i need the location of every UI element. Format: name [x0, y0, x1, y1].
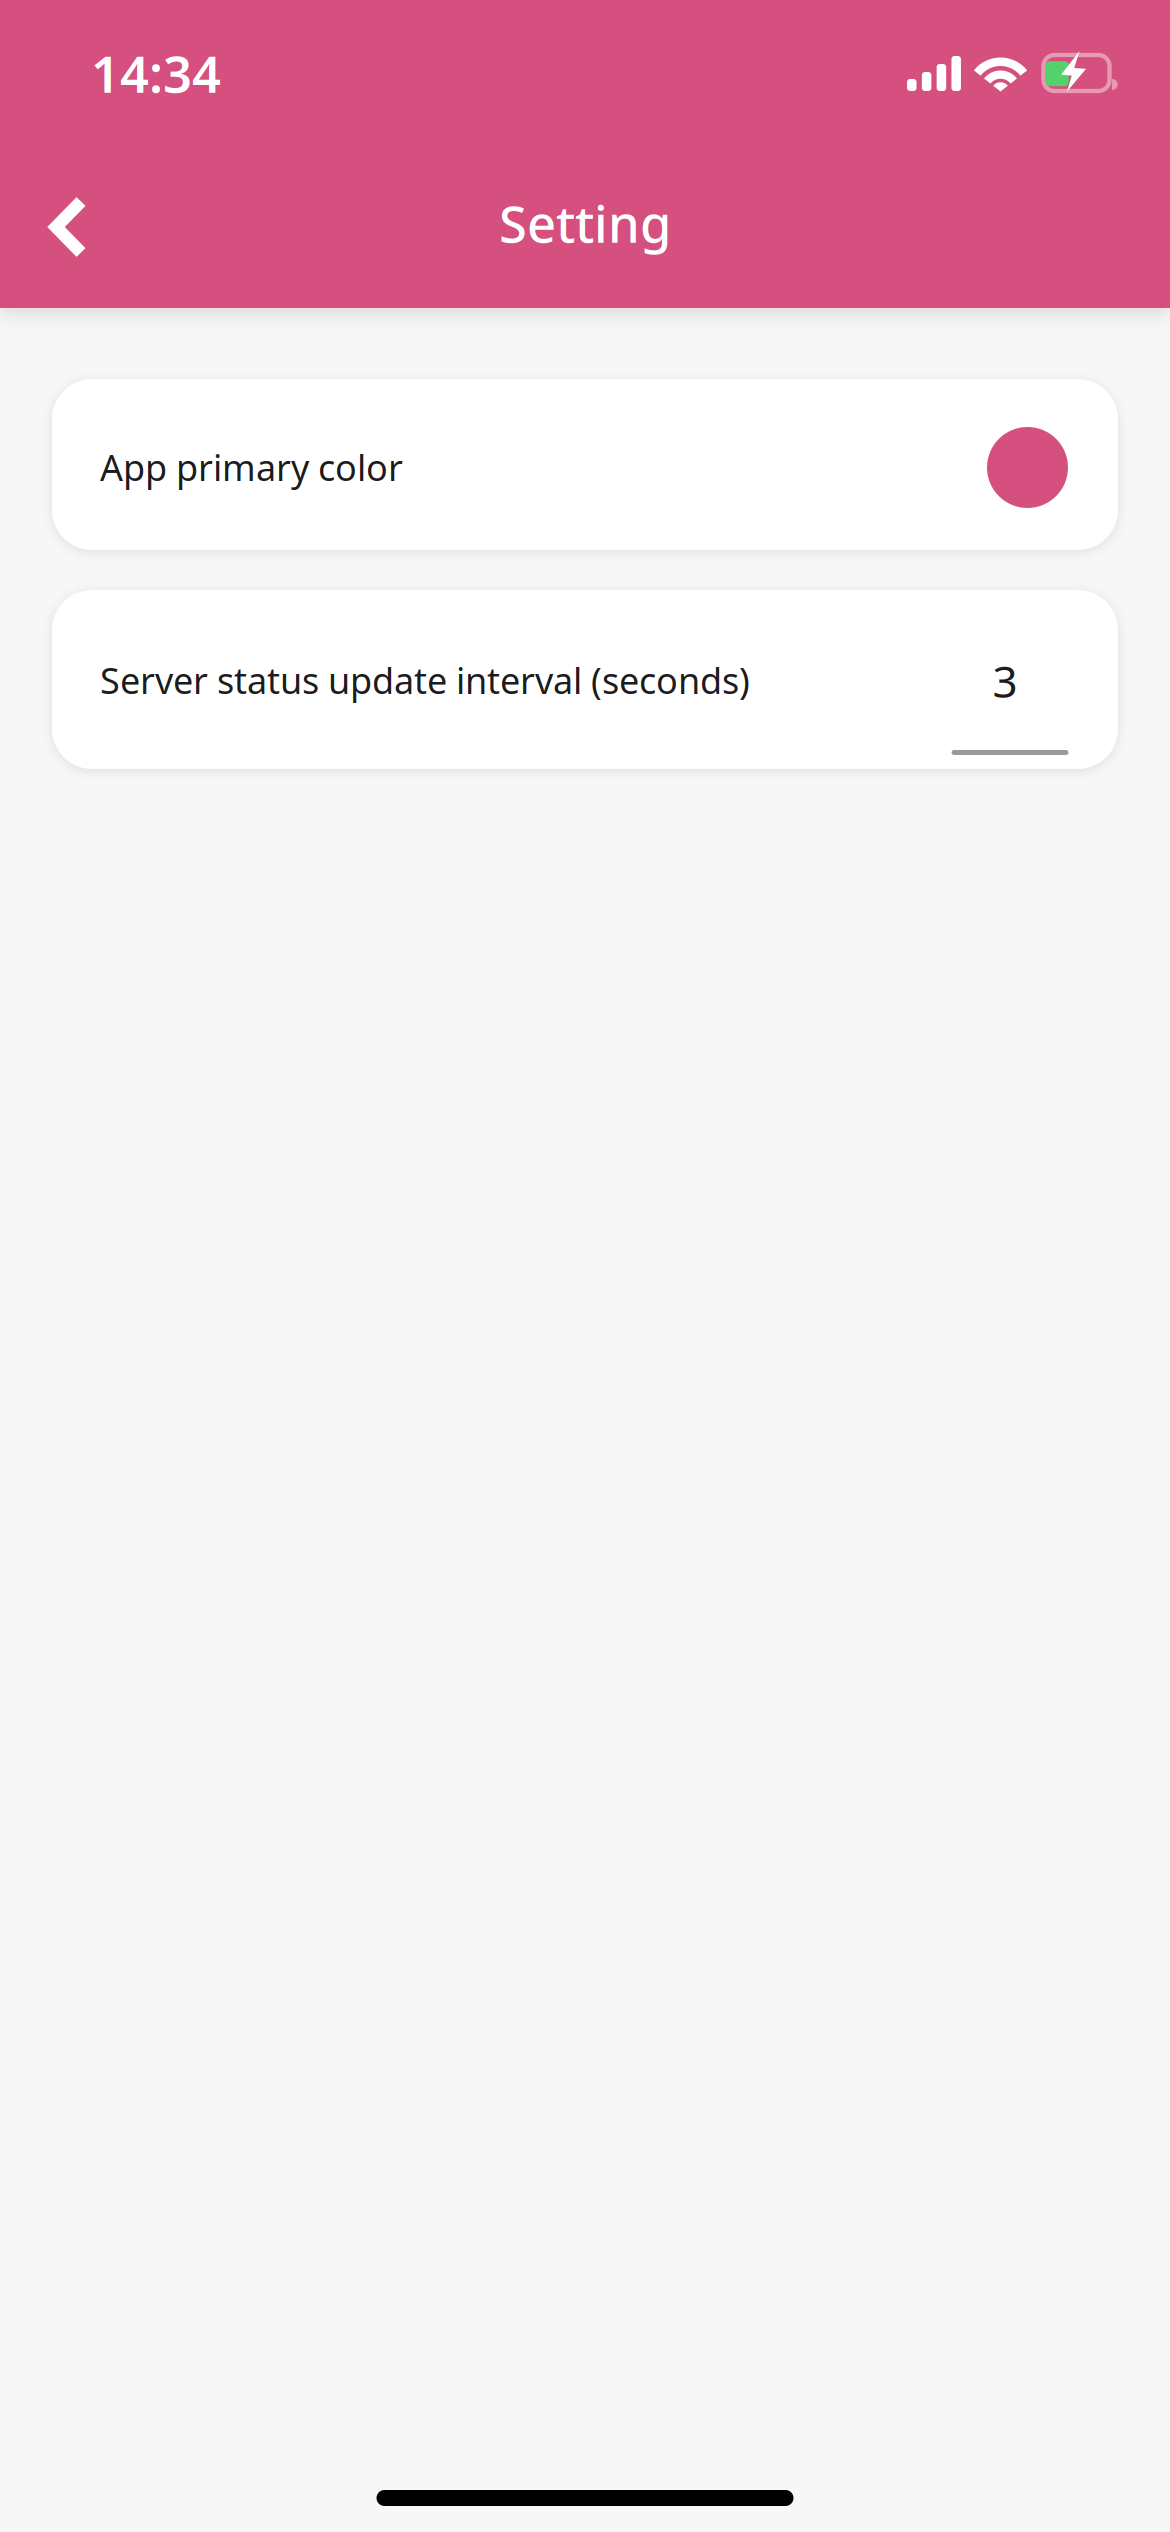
- staticText: Server status update interval (seconds): [100, 656, 750, 704]
- staticText: 3: [992, 652, 1017, 710]
- staticText: Setting: [499, 189, 671, 257]
- button[interactable]: App primary color: [0, 379, 1170, 550]
- staticText: App primary color: [100, 443, 403, 491]
- staticText: 14:34: [91, 39, 221, 107]
- button[interactable]: Server status update interval (seconds): [0, 590, 1170, 769]
- button[interactable]: Back: [24, 165, 114, 289]
